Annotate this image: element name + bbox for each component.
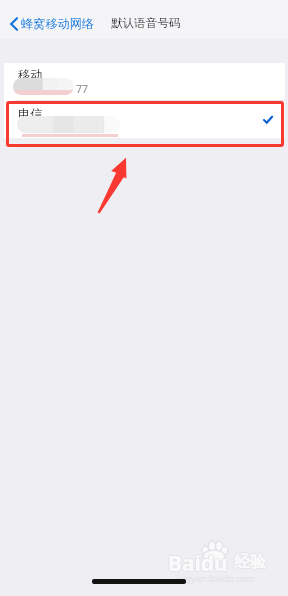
staticText: jingyan.baidu.com [175,572,255,584]
staticText: 经验 [234,551,266,571]
staticText: 经验 [233,552,265,572]
staticText: 77 [76,82,89,96]
button[interactable]: 电信 [4,101,285,138]
staticText: 移动 [18,67,43,82]
staticText: 蜂窝移动网络 [21,16,95,31]
staticText: 经验 [234,553,266,573]
staticText: 经验 [234,552,266,572]
staticText: 经验 [235,552,267,572]
staticText: Baidu [169,549,229,578]
staticText: Baidu [167,549,227,578]
staticText: Baidu [168,550,228,579]
staticText: 电信 [18,106,43,121]
other: 已选择 [261,114,275,125]
button[interactable]: 移动 [4,63,285,100]
staticText: Baidu [168,549,228,578]
button[interactable]: 返回 蜂窝移动网络 [0,12,103,35]
staticText: Baidu [168,548,228,577]
staticText: 默认语音号码 [111,16,181,31]
